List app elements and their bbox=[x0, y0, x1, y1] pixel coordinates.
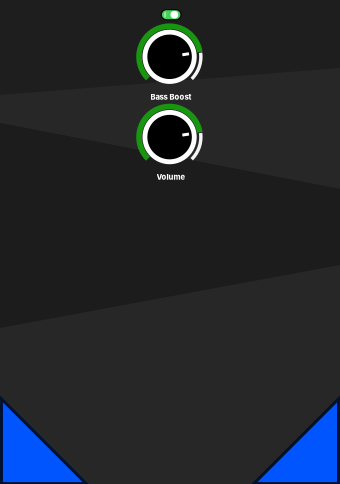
button[interactable]: Power bbox=[0, 0, 340, 484]
staticText: Volume bbox=[157, 172, 186, 182]
staticText: Bass Boost bbox=[151, 92, 192, 102]
button[interactable]: Volume bbox=[0, 0, 340, 484]
button[interactable]: Bass Boost bbox=[0, 0, 340, 484]
